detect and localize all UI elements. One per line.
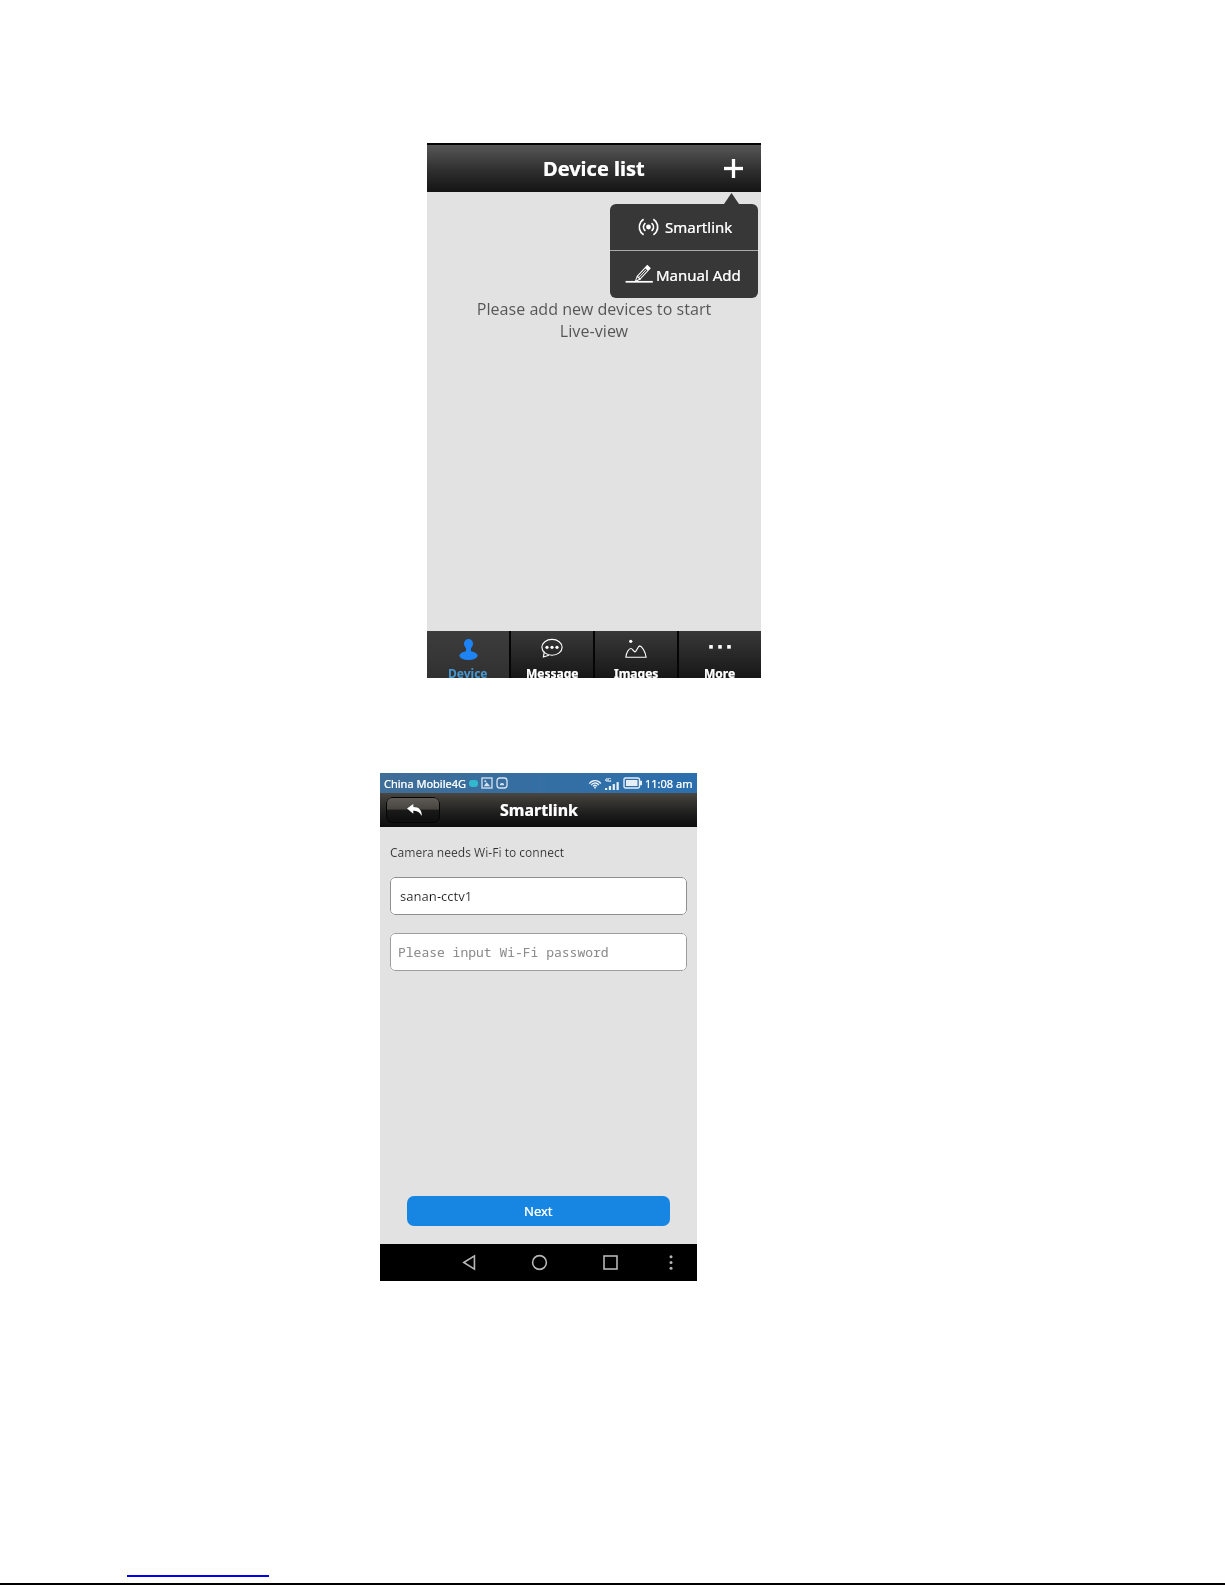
button[interactable]: Add device [705,145,761,192]
button[interactable]: Message [511,631,593,678]
staticText: More [704,665,736,681]
button[interactable]: Please input Wi-Fi password [390,933,687,971]
button[interactable]: Back [386,797,440,823]
staticText: 11:08 am [645,776,693,791]
staticText: Please add new devices to start Live-vie… [427,298,761,342]
staticText: Next [524,1202,553,1220]
staticText: Message [526,665,579,681]
staticText: Camera needs Wi-Fi to connect [390,844,565,860]
staticText: Images [614,665,659,681]
button[interactable]: Smartlink [610,204,758,250]
staticText: China Mobile4G [384,776,466,791]
staticText: sanan-cctv1 [400,887,473,905]
button[interactable]: Home [524,1247,555,1278]
staticText: 4G [605,777,612,784]
button[interactable]: sanan-cctv1 [390,877,687,915]
staticText: Manual Add [656,265,741,285]
staticText: Device [448,665,488,681]
button[interactable]: Device [427,631,509,678]
button[interactable]: Manual Add [610,251,758,298]
button[interactable]: Menu [655,1247,686,1278]
button[interactable]: Back [454,1247,485,1278]
button[interactable]: Recents [595,1247,626,1278]
button[interactable]: Images [595,631,677,678]
button[interactable]: Next [407,1196,670,1226]
button[interactable]: More [679,631,761,678]
staticText: Smartlink [500,799,578,821]
staticText: Device list [543,155,645,182]
staticText: Please input Wi-Fi password [398,943,609,961]
staticText: Smartlink [665,217,733,237]
